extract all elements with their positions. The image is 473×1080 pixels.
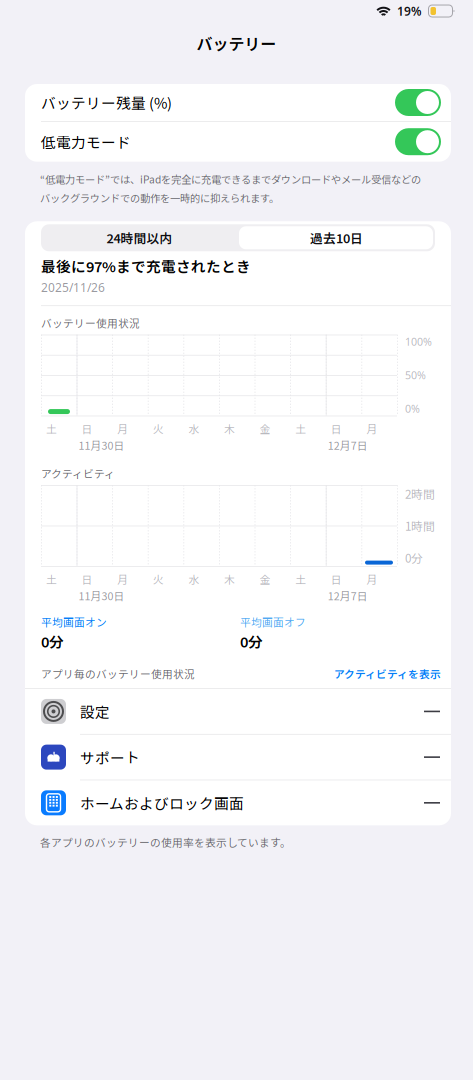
staticText: 100% (405, 335, 432, 349)
staticText: 月 (366, 571, 377, 587)
staticText: 日 (82, 421, 93, 436)
staticText: アクティビティ (41, 466, 115, 481)
staticText: 平均画面オン (41, 614, 107, 630)
staticText: 月 (117, 571, 128, 587)
staticText: 土 (295, 421, 306, 436)
staticText: 12月7日 (328, 588, 368, 603)
staticText: 平均画面オフ (240, 614, 306, 630)
staticText: 日 (82, 571, 93, 587)
staticText: 金 (260, 421, 271, 436)
staticText: 火 (153, 571, 164, 587)
staticText: バッテリー使用状況 (41, 315, 140, 331)
staticText: 0分 (405, 549, 423, 566)
staticText: 水 (188, 571, 199, 587)
staticText: バッテリー残量 (%) (41, 92, 172, 113)
staticText: アクティビティを表示 (334, 666, 441, 681)
button[interactable]: 低電力モード (25, 122, 451, 162)
staticText: 2025/11/26 (41, 279, 105, 295)
button[interactable]: 過去10日 (238, 224, 435, 251)
staticText: 月 (366, 421, 377, 436)
button[interactable]: アクティビティを表示 (334, 666, 441, 681)
staticText: 0% (405, 401, 420, 416)
staticText: 12月7日 (328, 437, 368, 453)
staticText: バックグラウンドでの動作を一時的に抑えられます。 (40, 190, 279, 205)
button[interactable]: 24時間以内 (41, 224, 238, 251)
staticText: 水 (188, 421, 199, 436)
staticText: 土 (46, 571, 57, 587)
staticText: 2時間 (405, 485, 435, 502)
staticText: 0分 (41, 631, 64, 652)
staticText: 各アプリのバッテリーの使用率を表示しています。 (40, 834, 291, 850)
staticText: 木 (224, 421, 235, 436)
button[interactable]: サポート (25, 735, 451, 780)
button[interactable]: ホームおよびロック画面 (25, 780, 451, 825)
staticText: 日 (331, 571, 342, 587)
staticText: 0分 (240, 631, 263, 652)
staticText: 設定 (80, 701, 110, 722)
staticText: 土 (295, 571, 306, 587)
staticText: 木 (224, 571, 235, 587)
staticText: 19% (397, 3, 422, 19)
staticText: サポート (80, 747, 140, 768)
staticText: 最後に97%まで充電されたとき (41, 255, 251, 276)
staticText: 過去10日 (310, 229, 363, 247)
staticText: バッテリー (196, 31, 276, 54)
staticText: 50% (405, 368, 426, 382)
staticText: ホームおよびロック画面 (80, 792, 244, 813)
staticText: 24時間以内 (106, 229, 172, 247)
staticText: 金 (260, 571, 271, 587)
button[interactable]: バッテリー残量 (%) (25, 84, 451, 121)
staticText: 火 (153, 421, 164, 436)
staticText: 月 (117, 421, 128, 436)
staticText: “低電力モード”では、iPadを完全に充電できるまでダウンロードやメール受信など… (40, 172, 421, 186)
staticText: 11月30日 (79, 588, 125, 603)
staticText: 土 (46, 421, 57, 436)
staticText: 低電力モード (41, 131, 131, 152)
button[interactable]: 設定 (25, 689, 451, 734)
staticText: アプリ毎のバッテリー使用状況 (41, 666, 195, 681)
staticText: 11月30日 (79, 437, 125, 453)
staticText: 日 (331, 421, 342, 436)
staticText: 1時間 (405, 517, 435, 534)
